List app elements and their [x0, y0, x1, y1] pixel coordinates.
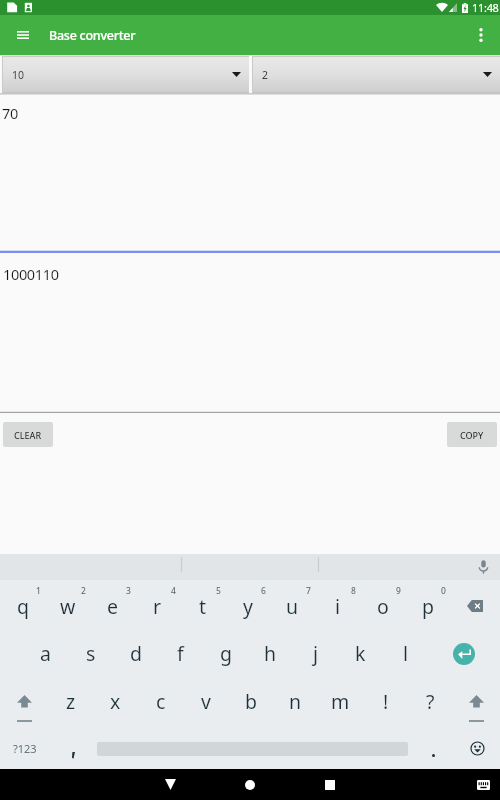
staticText: a	[40, 640, 51, 667]
staticText: ?123	[13, 741, 37, 756]
button[interactable]: 3	[90, 580, 135, 630]
staticText: r	[153, 593, 162, 620]
staticText: 11:48	[472, 0, 499, 15]
button[interactable]: a	[22, 630, 68, 677]
staticText: s	[86, 640, 96, 667]
staticText: 1	[36, 585, 41, 597]
button[interactable]: 4	[135, 580, 180, 630]
staticText: x	[110, 688, 121, 715]
button[interactable]: ?	[408, 677, 453, 724]
staticText: !	[383, 688, 389, 715]
staticText: 70	[2, 103, 18, 123]
staticText: f	[177, 640, 184, 667]
button[interactable]: Space	[97, 724, 408, 769]
button[interactable]	[50, 724, 97, 769]
staticText: j	[313, 640, 319, 667]
staticText: t	[199, 593, 207, 620]
button[interactable]: v	[183, 677, 228, 724]
staticText: b	[245, 688, 257, 715]
button[interactable]: Symbols	[0, 724, 50, 769]
button[interactable]: Home	[234, 769, 266, 800]
staticText: o	[377, 593, 389, 620]
staticText: 5	[216, 585, 221, 597]
staticText: 2	[81, 585, 86, 597]
button[interactable]: d	[113, 630, 158, 677]
staticText: v	[201, 688, 211, 715]
button[interactable]: Back	[154, 769, 186, 800]
staticText: p	[422, 593, 434, 620]
staticText: k	[355, 640, 366, 667]
staticText: m	[331, 688, 350, 715]
staticText: 6	[261, 585, 266, 597]
button[interactable]: c	[138, 677, 183, 724]
button[interactable]: Recent apps	[314, 769, 346, 800]
button[interactable]: Enter	[428, 630, 500, 677]
button[interactable]: m	[318, 677, 363, 724]
staticText: COPY	[460, 429, 484, 441]
button[interactable]: b	[228, 677, 273, 724]
button[interactable]: Open navigation drawer	[0, 15, 45, 55]
staticText: e	[107, 593, 118, 620]
staticText: Base converter	[49, 27, 136, 44]
button[interactable]: 8	[315, 580, 360, 630]
staticText: w	[60, 593, 76, 620]
staticText: z	[66, 688, 76, 715]
staticText: 8	[351, 585, 356, 597]
button[interactable]: Shift	[453, 677, 500, 724]
button[interactable]: 0	[405, 580, 450, 630]
button[interactable]: 2	[45, 580, 90, 630]
staticText: CLEAR	[14, 429, 42, 441]
button[interactable]: 5	[180, 580, 225, 630]
button[interactable]: n	[273, 677, 318, 724]
button[interactable]: j	[293, 630, 338, 677]
staticText: h	[264, 640, 277, 667]
button[interactable]: k	[338, 630, 383, 677]
button[interactable]: 7	[270, 580, 315, 630]
button[interactable]: h	[248, 630, 293, 677]
staticText: q	[17, 593, 29, 620]
staticText: u	[286, 593, 299, 620]
button[interactable]: 6	[225, 580, 270, 630]
staticText: y	[243, 593, 253, 620]
button[interactable]: x	[93, 677, 138, 724]
staticText: c	[156, 688, 166, 715]
button[interactable]: g	[203, 630, 248, 677]
button[interactable]: f	[158, 630, 203, 677]
button[interactable]: Voice input	[469, 554, 497, 580]
staticText: 4	[171, 585, 176, 597]
staticText: d	[130, 640, 142, 667]
staticText: 7	[306, 585, 311, 597]
staticText: n	[289, 688, 302, 715]
staticText: l	[403, 640, 409, 667]
button[interactable]: 1	[0, 580, 45, 630]
staticText: 10	[12, 68, 25, 82]
button[interactable]: Emoji	[455, 724, 500, 769]
staticText: 9	[396, 585, 401, 597]
staticText: 2	[262, 68, 269, 82]
button[interactable]: l	[383, 630, 428, 677]
button[interactable]: 10	[2, 56, 249, 93]
button[interactable]: Shift	[0, 677, 49, 724]
button[interactable]: 9	[360, 580, 405, 630]
staticText: i	[335, 593, 341, 620]
staticText: g	[220, 640, 232, 667]
button[interactable]: z	[49, 677, 93, 724]
button[interactable]: COPY	[447, 422, 497, 447]
staticText: ?	[426, 688, 435, 715]
button[interactable]: More options	[462, 15, 500, 55]
button[interactable]: Hide keyboard	[467, 769, 499, 800]
button[interactable]: CLEAR	[3, 422, 53, 447]
button[interactable]: 2	[252, 56, 500, 93]
staticText: 3	[126, 585, 131, 597]
button[interactable]: s	[68, 630, 113, 677]
button[interactable]	[408, 724, 455, 769]
staticText: 0	[441, 585, 446, 597]
button[interactable]: !	[363, 677, 408, 724]
button[interactable]: Backspace	[450, 580, 500, 630]
staticText: 1000110	[3, 264, 59, 284]
